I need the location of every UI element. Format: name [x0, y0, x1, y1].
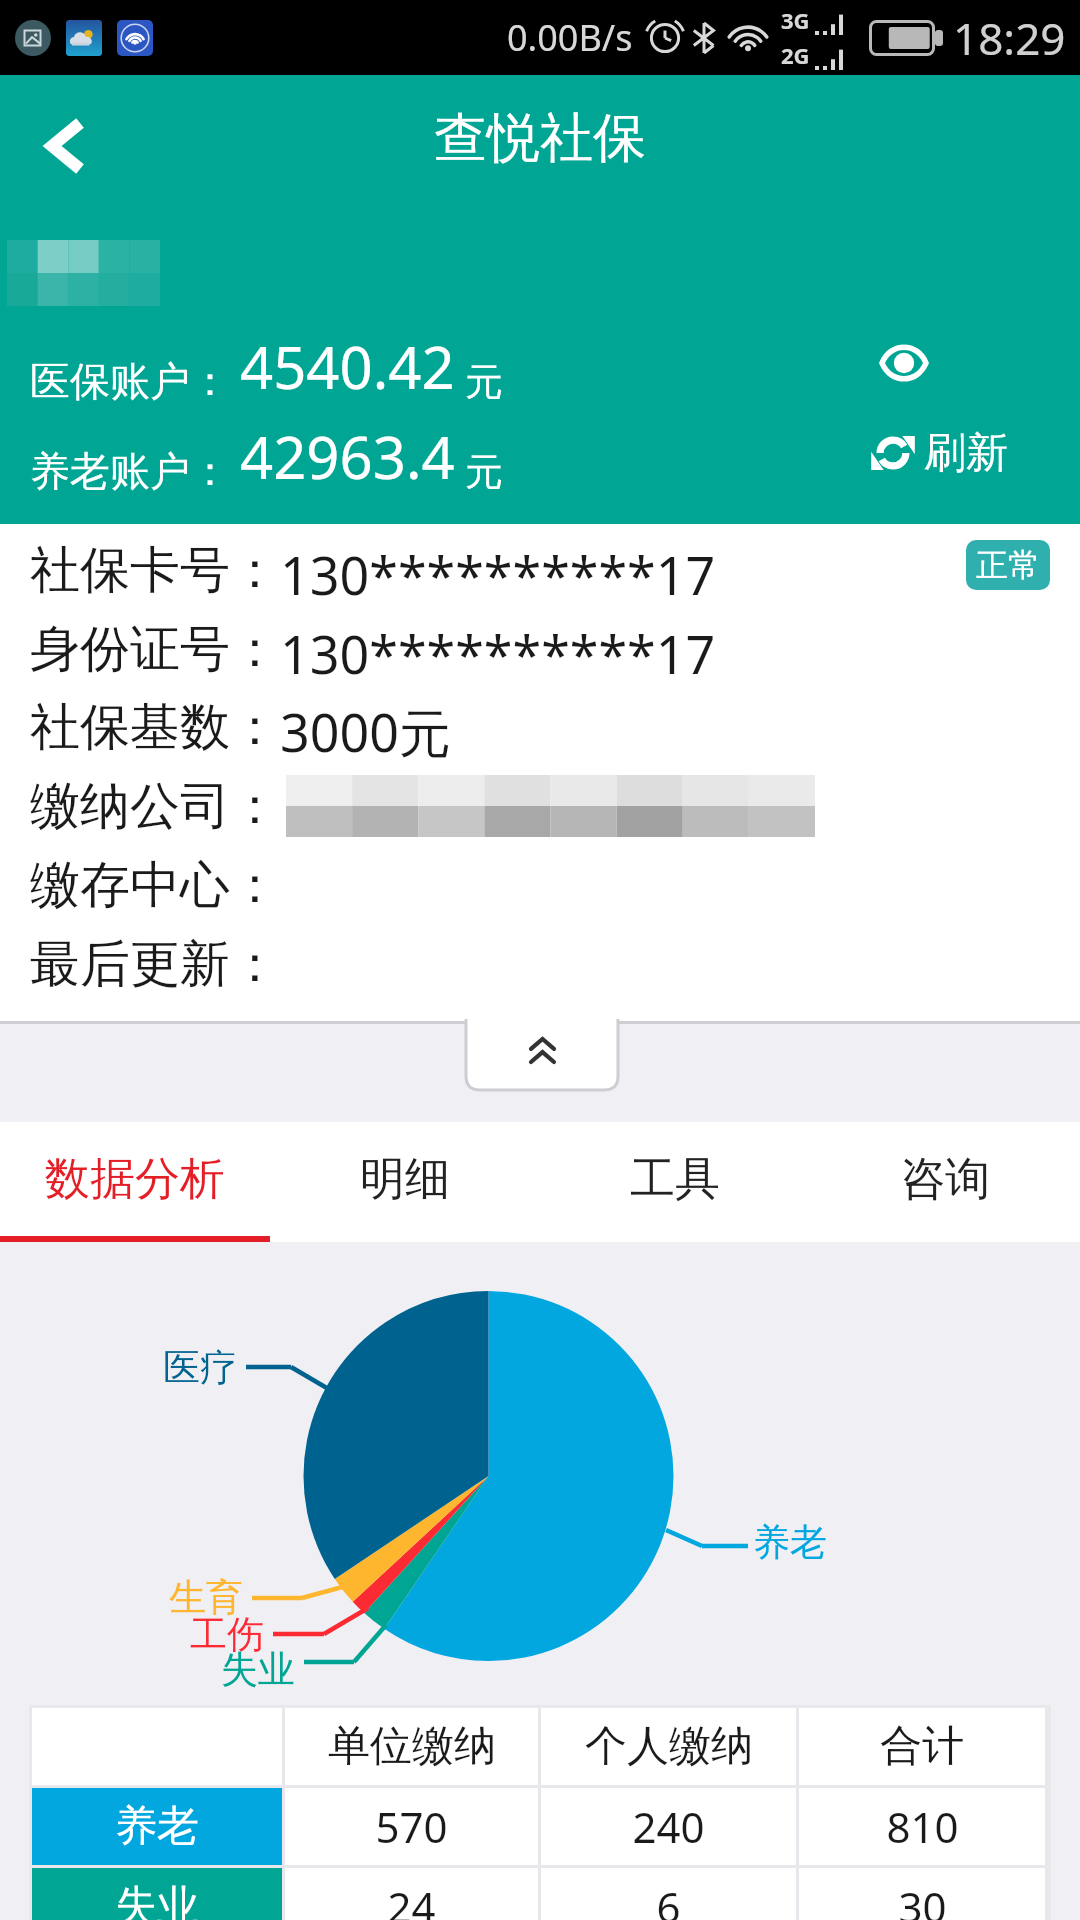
staticText: 缴存中心：	[30, 854, 280, 916]
button[interactable]: 工具	[540, 1122, 810, 1242]
staticText: 570	[375, 1798, 448, 1855]
button[interactable]: 咨询	[810, 1122, 1080, 1242]
button[interactable]: 240	[541, 1788, 796, 1865]
staticText: 养老账户：	[30, 446, 230, 496]
button[interactable]: 养老	[32, 1788, 282, 1865]
button[interactable]: 24	[285, 1868, 538, 1920]
button[interactable]: 刷新	[874, 422, 1008, 484]
staticText: 130**********17	[280, 618, 716, 680]
staticText: 失业	[221, 1646, 295, 1693]
staticText: 合计	[880, 1720, 964, 1773]
button[interactable]: 失业	[32, 1868, 282, 1920]
staticText: 生育	[169, 1574, 243, 1621]
staticText: 3G	[781, 5, 810, 35]
button[interactable]: 30	[799, 1868, 1045, 1920]
staticText: 明细	[360, 1151, 450, 1208]
button[interactable]: 6	[541, 1868, 796, 1920]
button[interactable]: Toggle balance visibility	[864, 329, 944, 397]
staticText: 缴纳公司：	[30, 775, 280, 837]
staticText: 24	[387, 1878, 436, 1920]
staticText: 2G	[781, 40, 810, 70]
staticText: 养老	[115, 1800, 199, 1853]
staticText: 医保账户：	[30, 356, 230, 406]
button[interactable]: 个人缴纳	[541, 1708, 796, 1785]
staticText: 失业	[115, 1880, 199, 1920]
button[interactable]: 数据分析	[0, 1122, 270, 1242]
staticText: 30	[898, 1878, 947, 1920]
staticText: 单位缴纳	[328, 1720, 496, 1773]
staticText: 咨询	[900, 1151, 990, 1208]
staticText: 数据分析	[45, 1151, 225, 1208]
staticText: 工具	[630, 1151, 720, 1208]
staticText: 240	[632, 1798, 705, 1855]
staticText: 42963.4	[240, 417, 455, 496]
staticText: 最后更新：	[30, 933, 280, 995]
staticText: 元	[465, 358, 503, 406]
staticText: 查悦社保	[0, 105, 1080, 172]
button[interactable]: 570	[285, 1788, 538, 1865]
staticText: 工伤	[190, 1611, 264, 1658]
staticText: 养老	[753, 1519, 827, 1566]
button[interactable]: 单位缴纳	[285, 1708, 538, 1785]
button[interactable]: 810	[799, 1788, 1045, 1865]
staticText: 0.00B/s	[507, 13, 633, 62]
staticText: 社保基数：	[30, 696, 280, 758]
button[interactable]: Back	[6, 81, 126, 211]
staticText: 4540.42	[240, 327, 455, 406]
staticText: 18:29	[953, 8, 1066, 68]
button[interactable]: 合计	[799, 1708, 1045, 1785]
button[interactable]: 明细	[270, 1122, 540, 1242]
staticText: 刷新	[924, 427, 1008, 480]
button[interactable]: 正常	[966, 540, 1050, 590]
button[interactable]: Collapse details	[466, 1021, 618, 1090]
staticText: 3000元	[280, 696, 451, 758]
staticText: 810	[886, 1798, 959, 1855]
staticText: 社保卡号：	[30, 539, 280, 601]
staticText: 个人缴纳	[585, 1720, 753, 1773]
staticText: 身份证号：	[30, 618, 280, 680]
staticText: 130**********17	[280, 539, 716, 601]
staticText: 医疗	[163, 1344, 237, 1391]
staticText: 元	[465, 448, 503, 496]
staticText: 正常	[976, 545, 1040, 585]
staticText: 6	[656, 1878, 681, 1920]
